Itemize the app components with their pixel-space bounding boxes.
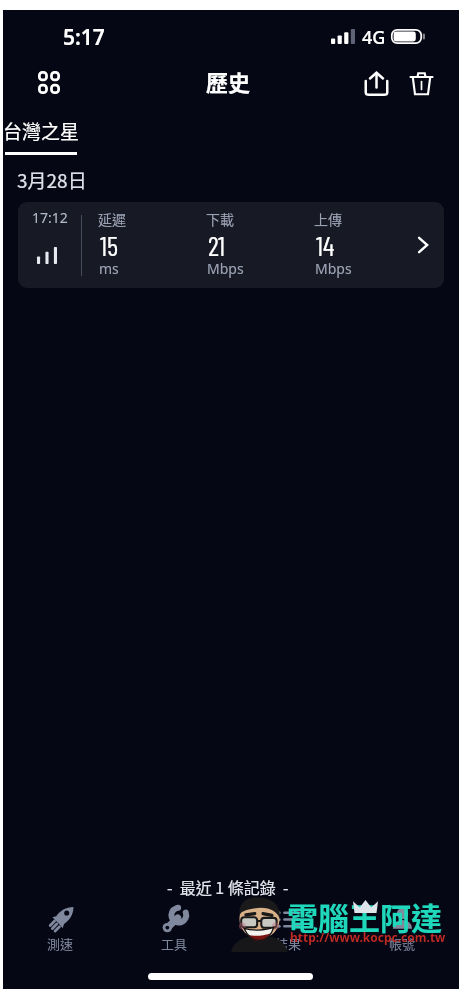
- button[interactable]: Results grid: [29, 62, 69, 102]
- staticText: 歷史: [206, 65, 251, 97]
- staticText: 4G: [362, 25, 386, 50]
- button[interactable]: 台灣之星: [4, 116, 86, 168]
- staticText: ms: [99, 259, 119, 278]
- staticText: 帳號: [389, 934, 416, 953]
- staticText: 14: [316, 229, 335, 261]
- button[interactable]: Share: [356, 63, 396, 103]
- staticText: 15: [100, 229, 118, 261]
- staticText: 電腦王阿達: [287, 894, 442, 939]
- staticText: 5:17: [63, 23, 105, 52]
- button[interactable]: 帳號: [345, 894, 459, 956]
- button[interactable]: 測速: [3, 894, 117, 956]
- staticText: 17:12: [32, 208, 68, 227]
- staticText: - 最近 1 條記錄 -: [167, 875, 289, 898]
- staticText: Mbps: [207, 259, 244, 278]
- staticText: http://www.kocpc.com.tw: [290, 929, 446, 945]
- staticText: 工具: [161, 934, 188, 953]
- staticText: Mbps: [315, 259, 352, 278]
- button[interactable]: 工具: [117, 894, 231, 956]
- staticText: 3月28日: [17, 166, 87, 194]
- staticText: 延遲: [98, 209, 126, 229]
- staticText: 結果: [275, 934, 302, 953]
- staticText: 台灣之星: [3, 117, 85, 145]
- button[interactable]: Delete: [401, 63, 441, 103]
- button[interactable]: 結果: [231, 894, 345, 956]
- staticText: 下載: [206, 209, 234, 229]
- staticText: 上傳: [314, 209, 342, 229]
- staticText: 21: [208, 229, 225, 261]
- staticText: 測速: [47, 934, 74, 953]
- button[interactable]: 17:12: [18, 202, 444, 288]
